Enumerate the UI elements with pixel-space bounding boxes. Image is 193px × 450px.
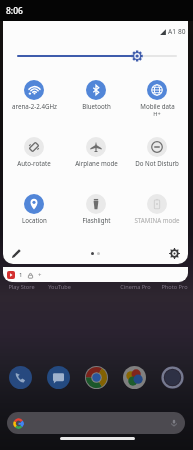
staticText: Airplane mode xyxy=(75,159,118,167)
button[interactable]: STAMINA mode xyxy=(127,194,187,224)
button[interactable]: Flashlight xyxy=(66,194,126,224)
button[interactable]: Brightness xyxy=(3,46,188,66)
button[interactable]: App xyxy=(123,366,146,389)
staticText: 8:06 xyxy=(6,5,23,17)
button[interactable]: Airplane mode xyxy=(66,137,126,167)
staticText: H+ xyxy=(153,110,161,118)
button[interactable]: App xyxy=(9,366,32,389)
staticText: Cinema Pro xyxy=(120,283,151,291)
button[interactable]: Location xyxy=(4,194,64,224)
staticText: 1 xyxy=(19,271,23,279)
button[interactable]: Do Not Disturb xyxy=(127,137,187,167)
staticText: Play Store xyxy=(8,283,35,291)
button[interactable]: Bluetooth xyxy=(66,80,126,110)
staticText: Bluetooth xyxy=(82,102,111,110)
staticText: YouTube xyxy=(48,283,71,291)
button[interactable]: 1 xyxy=(3,267,188,282)
staticText: Location xyxy=(22,216,47,224)
button[interactable]: App xyxy=(161,366,184,389)
button[interactable]: App xyxy=(85,366,108,389)
staticText: Photo Pro xyxy=(161,283,188,291)
staticText: Auto-rotate xyxy=(17,159,51,167)
button[interactable]: Settings xyxy=(169,248,180,259)
button[interactable]: App xyxy=(47,366,70,389)
staticText: Mobile data xyxy=(140,102,175,110)
staticText: 80 xyxy=(178,27,186,36)
staticText: + xyxy=(38,271,42,279)
staticText: Flashlight xyxy=(82,216,111,224)
button[interactable]: Auto-rotate xyxy=(4,137,64,167)
button[interactable]: arena-2-2.4GHz xyxy=(4,80,64,110)
staticText: A1 xyxy=(168,27,176,36)
staticText: Do Not Disturb xyxy=(135,159,179,167)
staticText: arena-2-2.4GHz xyxy=(12,102,57,110)
button[interactable]: Search xyxy=(7,412,185,434)
button[interactable]: Mobile data xyxy=(127,80,187,118)
button[interactable]: Edit xyxy=(11,248,22,259)
staticText: STAMINA mode xyxy=(134,216,180,224)
